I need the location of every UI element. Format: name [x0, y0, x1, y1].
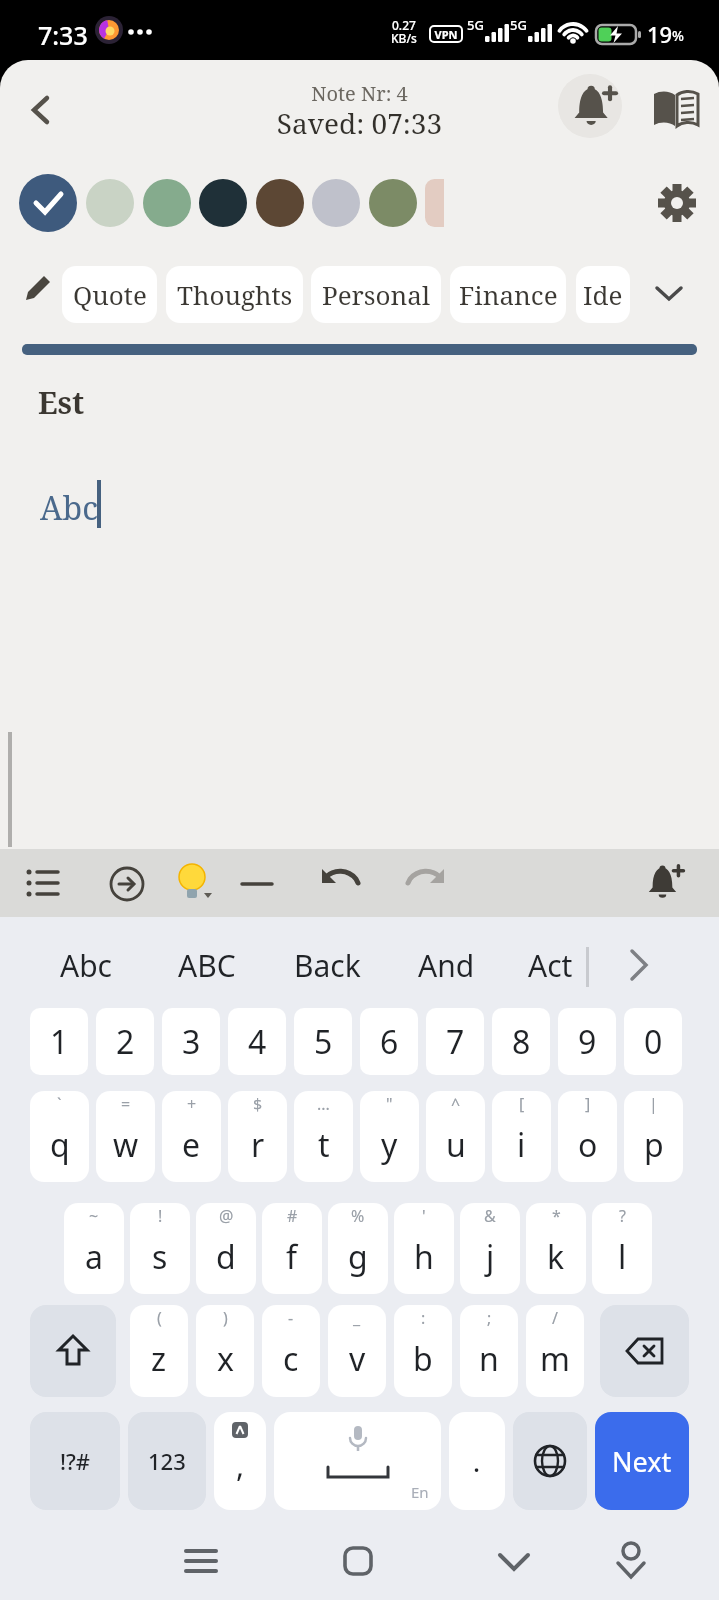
button[interactable] — [369, 179, 417, 227]
button[interactable]: @ — [196, 1203, 256, 1294]
button[interactable]: Thoughts — [166, 266, 303, 323]
button[interactable]: ... — [294, 1091, 353, 1182]
button[interactable]: ; — [460, 1305, 518, 1397]
button[interactable] — [18, 272, 54, 308]
button[interactable]: 3 — [162, 1008, 220, 1075]
button[interactable]: 1 — [30, 1008, 88, 1075]
staticText: g — [348, 1235, 368, 1279]
button[interactable] — [256, 179, 304, 227]
staticText: Quote — [73, 277, 147, 312]
button[interactable] — [558, 74, 622, 138]
button[interactable]: " — [360, 1091, 419, 1182]
button[interactable]: ( — [130, 1305, 188, 1397]
button[interactable]: En — [274, 1412, 441, 1510]
button[interactable] — [28, 96, 56, 124]
button[interactable] — [199, 179, 247, 227]
staticText: Act — [528, 945, 573, 986]
button[interactable]: Personal — [311, 266, 441, 323]
button[interactable] — [312, 179, 360, 227]
staticText: . — [473, 1444, 481, 1479]
button[interactable]: # — [262, 1203, 322, 1294]
staticText: 4 — [248, 1020, 267, 1064]
button[interactable]: + — [162, 1091, 221, 1182]
button[interactable]: $ — [228, 1091, 287, 1182]
button[interactable] — [612, 1541, 650, 1581]
button[interactable] — [652, 282, 686, 306]
button[interactable]: / — [526, 1305, 584, 1397]
button[interactable] — [30, 1305, 116, 1397]
button[interactable]: % — [328, 1203, 388, 1294]
button[interactable]: [ — [492, 1091, 551, 1182]
button[interactable]: = — [96, 1091, 155, 1182]
button[interactable] — [109, 866, 145, 902]
button[interactable]: ` — [30, 1091, 89, 1182]
button[interactable] — [26, 867, 60, 899]
staticText: ~ — [89, 1205, 99, 1227]
button[interactable]: Quote — [62, 266, 157, 323]
button[interactable] — [86, 179, 134, 227]
button[interactable]: 4 — [228, 1008, 286, 1075]
staticText: ? — [619, 1205, 626, 1227]
button[interactable] — [176, 863, 216, 903]
button[interactable] — [513, 1412, 587, 1510]
button[interactable] — [496, 1551, 532, 1575]
button[interactable]: Finance — [450, 266, 566, 323]
button[interactable]: : — [394, 1305, 452, 1397]
button[interactable]: 8 — [492, 1008, 550, 1075]
staticText: h — [414, 1235, 434, 1279]
staticText: f — [286, 1235, 298, 1279]
button[interactable]: ' — [394, 1203, 454, 1294]
button[interactable]: ! — [130, 1203, 190, 1294]
staticText: , — [236, 1445, 245, 1486]
button[interactable]: ] — [558, 1091, 617, 1182]
button[interactable]: . — [449, 1412, 505, 1510]
button[interactable] — [570, 84, 616, 130]
button[interactable]: 0 — [624, 1008, 682, 1075]
button[interactable]: ? — [592, 1203, 652, 1294]
button[interactable]: 6 — [360, 1008, 418, 1075]
button[interactable] — [652, 90, 700, 130]
button[interactable] — [342, 1545, 374, 1577]
button[interactable]: !?# — [30, 1412, 120, 1510]
staticText: Abc — [40, 486, 98, 530]
staticText: ] — [585, 1093, 591, 1115]
button[interactable] — [626, 947, 652, 983]
button[interactable]: 123 — [128, 1412, 206, 1510]
staticText: ABC — [178, 945, 236, 986]
button[interactable]: Ide — [576, 266, 630, 323]
staticText: VPN — [429, 27, 463, 42]
button[interactable]: ) — [196, 1305, 254, 1397]
staticText: x — [217, 1337, 234, 1381]
staticText: And — [418, 945, 475, 986]
button[interactable] — [183, 1547, 219, 1579]
staticText: 6 — [380, 1020, 399, 1064]
staticText: 5 — [314, 1020, 333, 1064]
button[interactable]: Next — [595, 1412, 689, 1510]
button[interactable]: & — [460, 1203, 520, 1294]
staticText: $ — [253, 1093, 263, 1115]
button[interactable] — [320, 867, 362, 899]
button[interactable]: ~ — [64, 1203, 124, 1294]
button[interactable] — [19, 174, 77, 232]
button[interactable] — [242, 881, 274, 887]
button[interactable]: - — [262, 1305, 320, 1397]
button[interactable] — [645, 864, 683, 902]
button[interactable]: * — [526, 1203, 586, 1294]
button[interactable] — [600, 1305, 689, 1397]
staticText: Personal — [322, 277, 431, 312]
staticText: " — [386, 1093, 393, 1115]
button[interactable] — [656, 182, 698, 224]
button[interactable]: ^ — [426, 1091, 485, 1182]
button[interactable]: 5 — [294, 1008, 352, 1075]
staticText: _ — [353, 1307, 361, 1329]
button[interactable]: _ — [328, 1305, 386, 1397]
button[interactable] — [404, 867, 446, 899]
staticText: 1 — [50, 1020, 69, 1064]
button[interactable]: | — [624, 1091, 683, 1182]
staticText: Next — [612, 1443, 672, 1480]
button[interactable]: , — [214, 1412, 266, 1510]
button[interactable]: 2 — [96, 1008, 154, 1075]
button[interactable] — [143, 179, 191, 227]
button[interactable]: 9 — [558, 1008, 616, 1075]
button[interactable]: 7 — [426, 1008, 484, 1075]
